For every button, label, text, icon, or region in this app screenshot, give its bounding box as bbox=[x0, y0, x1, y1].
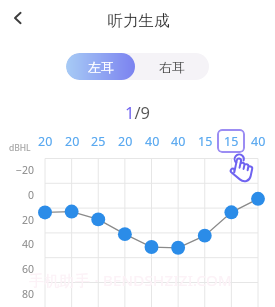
staticText: 40 bbox=[251, 133, 266, 150]
staticText: 左耳 bbox=[88, 59, 114, 75]
button[interactable]: 40 bbox=[164, 129, 192, 153]
staticText: dBHL bbox=[9, 142, 31, 154]
staticText: 25 bbox=[91, 133, 106, 150]
staticText: 20 bbox=[118, 133, 133, 150]
button[interactable]: 20 bbox=[58, 129, 86, 153]
button[interactable]: 25 bbox=[84, 129, 112, 153]
button[interactable]: 20 bbox=[31, 129, 59, 153]
button[interactable]: 40 bbox=[244, 129, 272, 153]
staticText: 15 bbox=[198, 133, 213, 150]
button[interactable]: 左耳 bbox=[66, 53, 135, 80]
staticText: 手机助手 · BENDSHZIZI.COM bbox=[29, 270, 233, 290]
button[interactable]: 20 bbox=[111, 129, 139, 153]
staticText: 40 bbox=[171, 133, 186, 150]
staticText: 20 bbox=[38, 133, 53, 150]
button[interactable]: 15 bbox=[217, 129, 245, 153]
staticText: −20 bbox=[16, 163, 35, 177]
staticText: 0 bbox=[28, 188, 35, 202]
staticText: 40 bbox=[22, 237, 35, 251]
button[interactable]: 40 bbox=[138, 129, 166, 153]
button[interactable]: 15 bbox=[191, 129, 219, 153]
staticText: 60 bbox=[22, 262, 35, 276]
staticText: 15 bbox=[224, 133, 239, 150]
staticText: 右耳 bbox=[159, 59, 185, 75]
button[interactable]: Back bbox=[4, 4, 32, 32]
staticText: 20 bbox=[65, 133, 80, 150]
staticText: 80 bbox=[22, 287, 35, 301]
staticText: 听力生成 bbox=[1, 11, 275, 31]
staticText: 1/9 bbox=[0, 101, 275, 123]
staticText: 20 bbox=[22, 213, 35, 227]
button[interactable]: 右耳 bbox=[135, 53, 209, 80]
staticText: 40 bbox=[145, 133, 160, 150]
